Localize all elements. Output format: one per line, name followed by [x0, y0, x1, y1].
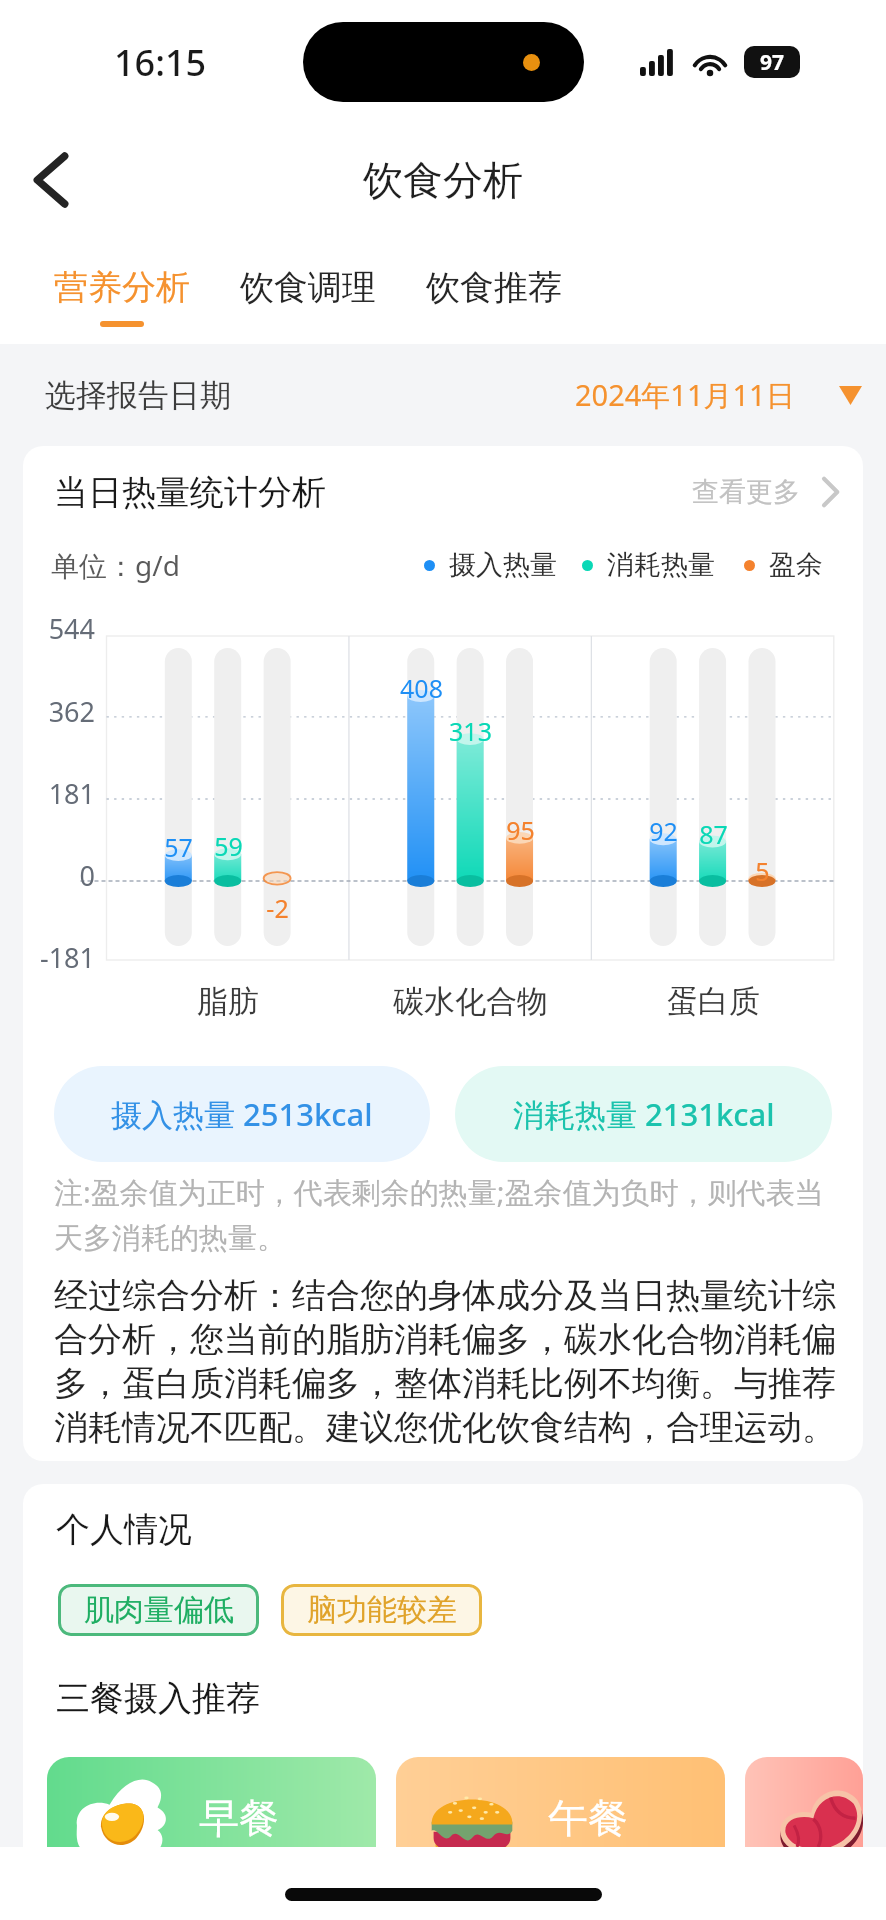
staticText: 饮食分析: [363, 155, 523, 205]
staticText: 57: [164, 830, 193, 864]
staticText: 313: [449, 714, 492, 748]
staticText: 个人情况: [56, 1508, 192, 1551]
staticText: 59: [214, 829, 243, 863]
staticText: 肌肉量偏低: [84, 1591, 234, 1629]
button[interactable]: 肌肉量偏低: [58, 1584, 259, 1636]
button[interactable]: 2024年11月11日: [575, 375, 862, 415]
staticText: 早餐: [199, 1793, 279, 1843]
staticText: 544: [48, 610, 95, 647]
staticText: 营养分析: [54, 266, 190, 309]
staticText: 87: [699, 817, 728, 851]
button[interactable]: 营养分析: [50, 262, 194, 331]
staticText: 97: [760, 48, 785, 77]
button[interactable]: 脑功能较差: [281, 1584, 482, 1636]
staticText: 经过综合分析：结合您的身体成分及当日热量统计综合分析，您当前的脂肪消耗偏多，碳水…: [54, 1274, 839, 1449]
staticText: 蛋白质: [667, 982, 760, 1021]
staticText: 碳水化合物: [393, 982, 548, 1021]
staticText: 消耗热量 2131kcal: [513, 1093, 775, 1135]
staticText: -2: [266, 891, 289, 925]
button[interactable]: 消耗热量 2131kcal: [455, 1066, 832, 1162]
staticText: 16:15: [114, 38, 207, 87]
staticText: 0: [79, 857, 95, 894]
button[interactable]: 摄入热量 2513kcal: [54, 1066, 430, 1162]
button[interactable]: 饮食调理: [236, 262, 380, 331]
staticText: -181: [39, 939, 95, 976]
staticText: 408: [400, 671, 443, 705]
button[interactable]: 晚餐: [745, 1757, 863, 1884]
staticText: 盈余: [769, 548, 823, 582]
staticText: 脑功能较差: [307, 1591, 457, 1629]
staticText: 查看更多: [692, 475, 800, 509]
staticText: 午餐: [548, 1793, 628, 1843]
button[interactable]: 饮食推荐: [422, 262, 566, 331]
button[interactable]: 查看更多: [692, 475, 839, 509]
staticText: 脂肪: [197, 982, 259, 1021]
staticText: 三餐摄入推荐: [56, 1677, 260, 1720]
staticText: 摄入热量: [449, 548, 557, 582]
staticText: 饮食调理: [240, 266, 376, 309]
staticText: 当日热量统计分析: [54, 471, 326, 514]
staticText: 消耗热量: [607, 548, 715, 582]
staticText: 2024年11月11日: [575, 375, 795, 415]
staticText: 5: [755, 854, 770, 888]
staticText: 注:盈余值为正时，代表剩余的热量;盈余值为负时，则代表当天多消耗的热量。: [54, 1172, 837, 1256]
staticText: 181: [48, 775, 95, 812]
staticText: 摄入热量 2513kcal: [111, 1093, 373, 1135]
button[interactable]: 早餐: [47, 1757, 376, 1884]
staticText: 362: [48, 693, 95, 730]
staticText: 选择报告日期: [45, 376, 231, 415]
staticText: 单位：g/d: [51, 546, 180, 584]
staticText: 饮食推荐: [426, 266, 562, 309]
staticText: 92: [649, 814, 678, 848]
button[interactable]: 午餐: [396, 1757, 725, 1884]
button[interactable]: Back: [16, 145, 86, 215]
staticText: 95: [506, 813, 535, 847]
